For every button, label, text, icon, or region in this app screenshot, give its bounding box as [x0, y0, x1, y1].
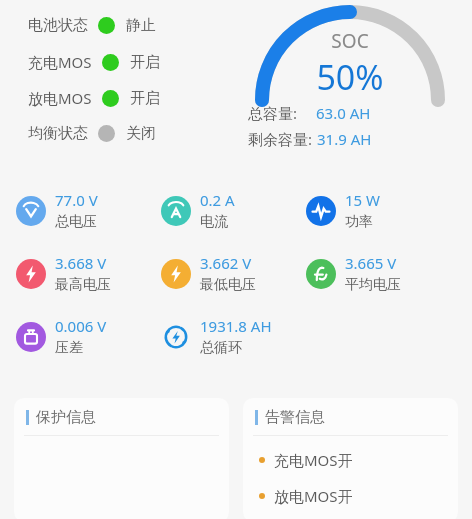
button[interactable]: metric icon: [16, 316, 161, 357]
staticText: 告警信息: [265, 408, 325, 427]
button[interactable]: metric icon: [161, 190, 306, 231]
staticText: 电池状态: [28, 16, 88, 35]
button[interactable]: metric icon: [306, 253, 451, 294]
staticText: 31.9 AH: [317, 129, 372, 149]
staticText: 1931.8 AH: [200, 316, 272, 336]
staticText: 充电MOS: [28, 52, 92, 72]
other: metric icon: [16, 259, 46, 289]
staticText: 均衡状态: [28, 124, 88, 143]
other: metric icon: [16, 196, 46, 226]
staticText: 剩余容量:: [248, 129, 313, 149]
other: total cycles: [161, 322, 191, 352]
other: metric icon: [161, 259, 191, 289]
staticText: 平均电压: [345, 276, 401, 294]
staticText: 最低电压: [200, 276, 256, 294]
staticText: 放电MOS: [28, 88, 92, 108]
button[interactable]: 告警信息: [243, 398, 458, 519]
staticText: 15 W: [345, 190, 381, 210]
button[interactable]: 电池状态: [28, 16, 156, 35]
staticText: 0.006 V: [55, 316, 107, 336]
staticText: 开启: [130, 53, 160, 72]
staticText: 0.2 A: [200, 190, 235, 210]
staticText: 50%: [316, 54, 384, 100]
staticText: 放电MOS开: [274, 486, 353, 506]
button[interactable]: 保护信息: [14, 398, 229, 519]
button[interactable]: metric icon: [306, 190, 451, 231]
staticText: 63.0 AH: [316, 103, 371, 123]
staticText: SOC: [331, 28, 369, 54]
button[interactable]: total cycles: [161, 316, 321, 357]
staticText: 3.668 V: [55, 253, 107, 273]
staticText: 压差: [55, 339, 83, 357]
staticText: 3.662 V: [200, 253, 252, 273]
staticText: 保护信息: [36, 408, 96, 427]
staticText: 开启: [130, 89, 160, 108]
staticText: 关闭: [126, 124, 156, 143]
staticText: 3.665 V: [345, 253, 397, 273]
staticText: 总循环: [200, 339, 242, 357]
staticText: 电流: [200, 213, 228, 231]
other: metric icon: [306, 196, 336, 226]
button[interactable]: 充电MOS: [28, 52, 160, 72]
staticText: 总容量:: [248, 103, 298, 123]
staticText: 最高电压: [55, 276, 111, 294]
staticText: 功率: [345, 213, 373, 231]
other: metric icon: [16, 322, 46, 352]
staticText: 总电压: [55, 213, 97, 231]
staticText: 77.0 V: [55, 190, 98, 210]
other: metric icon: [161, 196, 191, 226]
button[interactable]: 均衡状态: [28, 124, 156, 143]
button[interactable]: metric icon: [161, 253, 306, 294]
button[interactable]: metric icon: [16, 190, 161, 231]
button[interactable]: metric icon: [16, 253, 161, 294]
staticText: 静止: [126, 16, 156, 35]
staticText: 充电MOS开: [274, 450, 353, 470]
other: metric icon: [306, 259, 336, 289]
button[interactable]: 放电MOS: [28, 88, 160, 108]
